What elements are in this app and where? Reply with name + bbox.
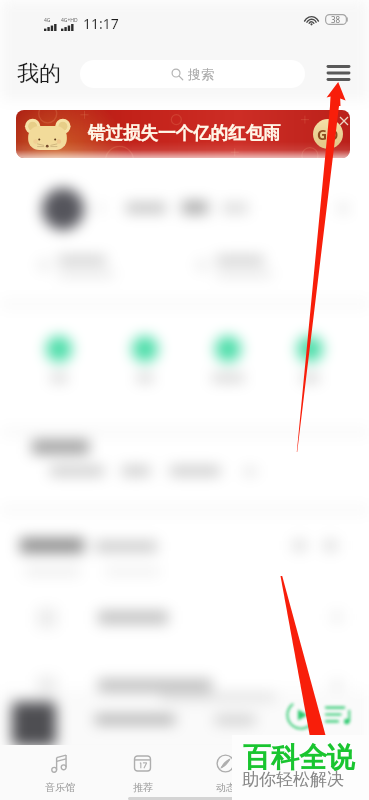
staticText: 4G [44,17,51,24]
staticText: 搜索 [188,66,214,82]
staticText: 我的 [17,60,61,88]
button[interactable]: 错过损失一个亿的红包雨 [16,110,350,158]
staticText: 动态 [216,781,236,794]
staticText: GO [317,125,339,144]
button[interactable]: 音乐馆 [19,745,101,795]
button[interactable]: 动态 [184,745,267,795]
staticText: 推荐 [133,781,153,794]
button[interactable]: Menu [323,58,353,88]
staticText: 错过损失一个亿的红包雨 [88,122,281,144]
button[interactable]: GO [313,119,343,149]
button[interactable]: Close [336,113,351,128]
staticText: 11:17 [83,14,119,33]
staticText: 音乐馆 [45,781,75,794]
button[interactable]: 搜索 [80,60,305,88]
staticText: 4G+HD [61,17,78,24]
staticText: 助你轻松解决 [242,769,344,790]
button[interactable]: 推荐 [101,745,184,795]
staticText: 38 [331,14,341,25]
staticText: 百科全说 [243,740,355,775]
